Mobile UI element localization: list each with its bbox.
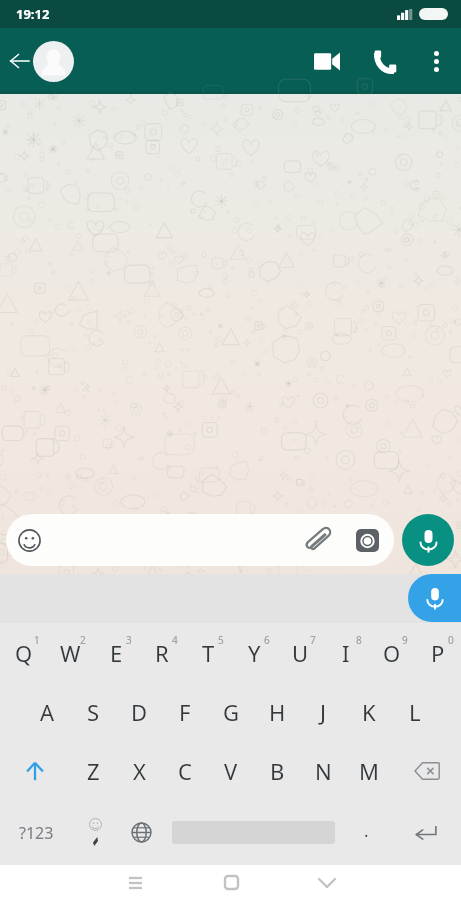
- staticText: E: [110, 638, 123, 668]
- staticText: N: [315, 756, 332, 786]
- button[interactable]: V: [208, 741, 254, 800]
- staticText: K: [362, 697, 376, 727]
- button[interactable]: Attach: [296, 520, 336, 560]
- staticText: W: [60, 638, 81, 668]
- staticText: D: [131, 697, 148, 727]
- staticText: Z: [87, 756, 100, 786]
- staticText: L: [409, 697, 421, 727]
- button[interactable]: W: [47, 623, 93, 682]
- button[interactable]: Emoji: [6, 514, 394, 566]
- button[interactable]: S: [70, 682, 116, 741]
- button[interactable]: Emoji keyboard: [72, 800, 118, 865]
- staticText: 7: [310, 633, 316, 647]
- button[interactable]: More options: [416, 41, 456, 81]
- staticText: ?123: [19, 822, 54, 844]
- staticText: T: [202, 638, 215, 668]
- button[interactable]: E: [93, 623, 139, 682]
- staticText: A: [40, 697, 55, 727]
- button[interactable]: I: [323, 623, 369, 682]
- staticText: 5: [218, 633, 224, 647]
- button[interactable]: F: [162, 682, 208, 741]
- staticText: 3: [126, 633, 132, 647]
- button[interactable]: H: [254, 682, 300, 741]
- staticText: 2: [80, 633, 86, 647]
- staticText: I: [342, 638, 350, 668]
- staticText: G: [223, 697, 240, 727]
- button[interactable]: B: [254, 741, 300, 800]
- staticText: 4: [172, 633, 178, 647]
- button[interactable]: ?123: [0, 800, 72, 865]
- staticText: M: [359, 756, 379, 786]
- staticText: F: [179, 697, 191, 727]
- button[interactable]: R: [139, 623, 185, 682]
- button[interactable]: Y: [231, 623, 277, 682]
- button[interactable]: Voice message: [402, 514, 454, 566]
- staticText: Y: [248, 638, 261, 668]
- button[interactable]: Voice typing: [408, 574, 461, 622]
- staticText: P: [431, 638, 445, 668]
- staticText: H: [269, 697, 286, 727]
- button[interactable]: T: [185, 623, 231, 682]
- staticText: 1: [34, 633, 40, 647]
- button[interactable]: Z: [70, 741, 116, 800]
- staticText: 0: [448, 633, 454, 647]
- button[interactable]: J: [300, 682, 346, 741]
- staticText: U: [292, 638, 309, 668]
- button[interactable]: C: [162, 741, 208, 800]
- staticText: C: [178, 756, 192, 786]
- staticText: 9: [402, 633, 408, 647]
- staticText: V: [224, 756, 238, 786]
- button[interactable]: Shift: [0, 741, 70, 800]
- staticText: X: [133, 756, 146, 786]
- button[interactable]: D: [116, 682, 162, 741]
- button[interactable]: G: [208, 682, 254, 741]
- button[interactable]: Camera: [347, 520, 387, 560]
- staticText: 6: [264, 633, 270, 647]
- button[interactable]: Enter: [389, 800, 461, 865]
- button[interactable]: Back: [1, 43, 37, 79]
- button[interactable]: Recent apps: [87, 865, 183, 900]
- staticText: .: [364, 819, 369, 842]
- button[interactable]: N: [300, 741, 346, 800]
- button[interactable]: L: [392, 682, 438, 741]
- button[interactable]: A: [24, 682, 70, 741]
- button[interactable]: Backspace: [392, 741, 461, 800]
- button[interactable]: K: [346, 682, 392, 741]
- staticText: R: [155, 638, 169, 668]
- staticText: B: [270, 756, 285, 786]
- button[interactable]: Voice call: [363, 39, 407, 83]
- button[interactable]: O: [369, 623, 415, 682]
- staticText: O: [383, 638, 401, 668]
- button[interactable]: Q: [0, 623, 47, 682]
- button[interactable]: Contact profile: [33, 41, 74, 82]
- staticText: 19:12: [16, 5, 50, 23]
- button[interactable]: Hide keyboard: [279, 865, 375, 900]
- button[interactable]: .: [343, 800, 389, 865]
- button[interactable]: P: [415, 623, 461, 682]
- button[interactable]: Video call: [305, 39, 349, 83]
- staticText: 8: [356, 633, 362, 647]
- button[interactable]: Emoji: [11, 522, 47, 558]
- staticText: Q: [15, 638, 33, 668]
- staticText: S: [87, 697, 100, 727]
- button[interactable]: X: [116, 741, 162, 800]
- button[interactable]: U: [277, 623, 323, 682]
- staticText: J: [320, 697, 327, 727]
- button[interactable]: M: [346, 741, 392, 800]
- button[interactable]: Space: [164, 800, 343, 865]
- button[interactable]: Home: [183, 865, 279, 900]
- button[interactable]: Change language: [118, 800, 164, 865]
